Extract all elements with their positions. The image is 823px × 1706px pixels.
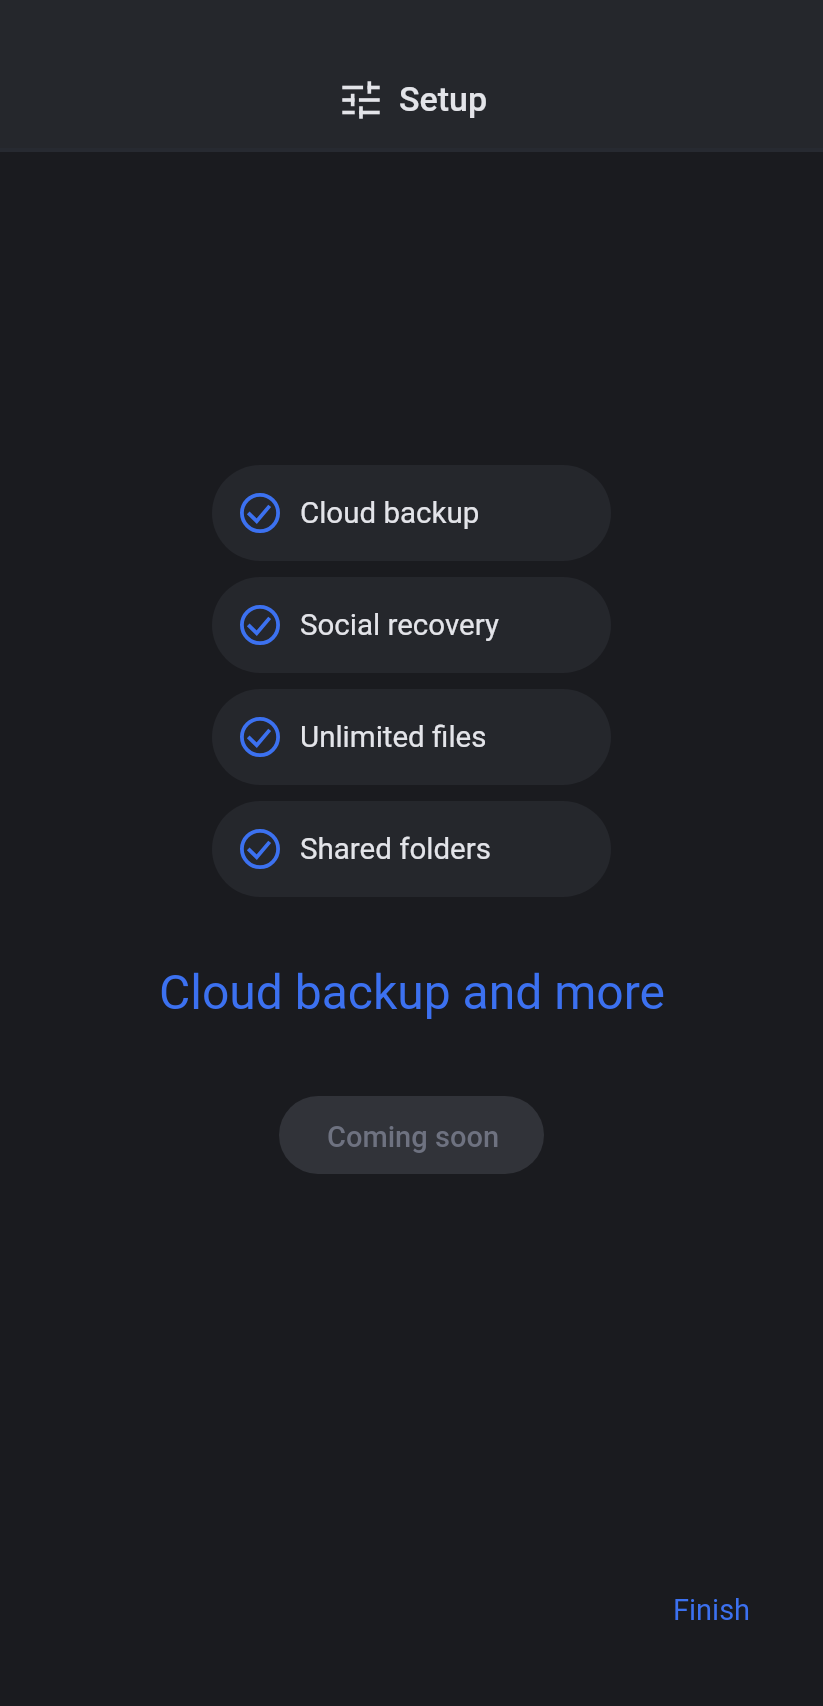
- staticText: Unlimited files: [300, 720, 487, 755]
- staticText: Finish: [673, 1593, 751, 1627]
- staticText: Cloud backup: [300, 496, 480, 531]
- button[interactable]: Coming soon: [279, 1096, 544, 1174]
- staticText: Social recovery: [300, 608, 499, 643]
- button[interactable]: Shared folders: [212, 801, 611, 897]
- other: Setup options: [336, 75, 386, 125]
- button[interactable]: Unlimited files: [212, 689, 611, 785]
- staticText: Shared folders: [300, 832, 491, 867]
- staticText: Coming soon: [327, 1120, 500, 1154]
- button[interactable]: Cloud backup: [212, 465, 611, 561]
- button[interactable]: Finish: [667, 1587, 757, 1633]
- button[interactable]: Social recovery: [212, 577, 611, 673]
- staticText: Setup: [399, 79, 488, 119]
- staticText: Cloud backup and more: [159, 964, 665, 1020]
